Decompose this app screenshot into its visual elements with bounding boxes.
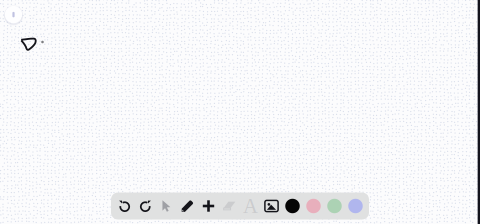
button[interactable]: Add text: [240, 192, 261, 219]
button[interactable]: Undo: [114, 192, 135, 219]
button[interactable]: Blue: [345, 192, 366, 219]
button[interactable]: Select: [156, 192, 177, 219]
button[interactable]: Redo: [135, 192, 156, 219]
button[interactable]: Erase: [219, 192, 240, 219]
button[interactable]: Pink: [303, 192, 324, 219]
button[interactable]: Insert image: [261, 192, 282, 219]
button[interactable]: More: [1, 3, 25, 27]
button[interactable]: Draw: [177, 192, 198, 219]
button[interactable]: Green: [324, 192, 345, 219]
button[interactable]: Insert shape: [198, 192, 219, 219]
button[interactable]: Black: [282, 192, 303, 219]
staticText: A: [243, 195, 258, 217]
